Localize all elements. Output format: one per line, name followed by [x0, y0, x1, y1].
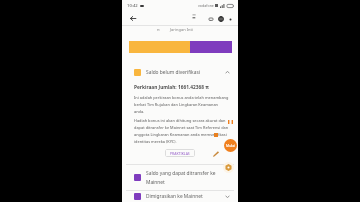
staticText: Mulai [226, 143, 235, 148]
staticText: vodafone [198, 3, 214, 8]
button[interactable]: Back [126, 12, 139, 25]
staticText: Saldo yang dapat ditransfer ke Mainnet [146, 170, 230, 185]
staticText: 10:42 [127, 3, 138, 9]
button[interactable]: Saldo yang dapat ditransfer ke Mainnet [122, 165, 238, 190]
button[interactable]: Pause mining [225, 116, 236, 127]
button[interactable]: Info [223, 162, 234, 173]
button[interactable]: Language [216, 14, 225, 23]
staticText: π [157, 27, 160, 32]
staticText: Saldo belum diverifikasi [146, 69, 200, 76]
staticText: Perkiraan Jumlah: 1661.42368 π [134, 84, 209, 91]
staticText: Dimigrasikan ke Mainnet [146, 193, 203, 200]
button[interactable]: PRAKTIKLAS [165, 149, 195, 157]
staticText: Hadiah bonus ini akan dihitung secara ak… [134, 118, 229, 145]
button[interactable]: Saldo belum diverifikasi [122, 62, 238, 83]
button[interactable]: Edit [211, 149, 220, 158]
staticText: Ini adalah perkiraan bonus anda telah me… [134, 95, 229, 115]
staticText: PRAKTIKLAS [170, 151, 190, 156]
button[interactable]: Chat [207, 15, 215, 23]
button[interactable]: Dimigrasikan ke Mainnet [122, 191, 238, 202]
staticText: Jaringan Inti [170, 27, 194, 32]
button[interactable]: Start mining [224, 139, 237, 152]
button[interactable]: Stop [211, 129, 220, 138]
button[interactable]: More options [227, 16, 233, 22]
